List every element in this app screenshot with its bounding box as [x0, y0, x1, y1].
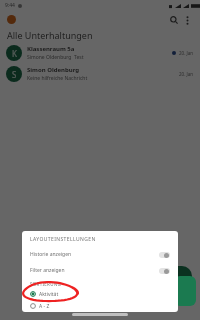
- button[interactable]: Historie anzeigen: [30, 250, 170, 259]
- staticText: S: [12, 69, 17, 80]
- button[interactable]: S: [0, 63, 200, 84]
- staticText: SORTIERUNG: [30, 281, 62, 287]
- staticText: Simone Oldenburg: [27, 54, 72, 61]
- staticText: Filter anzeigen: [30, 267, 65, 274]
- staticText: Keine hilfreiche Nachricht: [27, 75, 88, 82]
- staticText: 9:44: [5, 2, 15, 9]
- staticText: Simon Oldenburg: [27, 66, 80, 74]
- button[interactable]: Aktivität: [30, 290, 170, 298]
- staticText: K: [12, 48, 17, 59]
- staticText: LAYOUTEINSTELLUNGEN: [30, 236, 96, 243]
- button[interactable]: Verfassen: [174, 276, 196, 306]
- staticText: Alle Unterhaltungen: [7, 29, 93, 41]
- button[interactable]: Profil: [7, 15, 16, 24]
- staticText: Klassenraum 5a: [27, 45, 75, 53]
- staticText: Aktivität: [39, 291, 59, 298]
- button[interactable]: Weitere Optionen: [181, 14, 193, 26]
- staticText: 20. Jan: [179, 50, 194, 56]
- button[interactable]: A - Z: [30, 302, 170, 310]
- staticText: Test: [74, 54, 84, 61]
- staticText: A - Z: [39, 303, 50, 310]
- staticText: Historie anzeigen: [30, 251, 72, 258]
- button[interactable]: Neue Nachricht verfassen: [158, 266, 192, 300]
- button[interactable]: Filter anzeigen: [30, 266, 170, 275]
- staticText: 20. Jan: [179, 71, 194, 77]
- button[interactable]: Suche: [167, 13, 181, 27]
- button[interactable]: [0, 0, 200, 320]
- button[interactable]: K: [0, 42, 200, 63]
